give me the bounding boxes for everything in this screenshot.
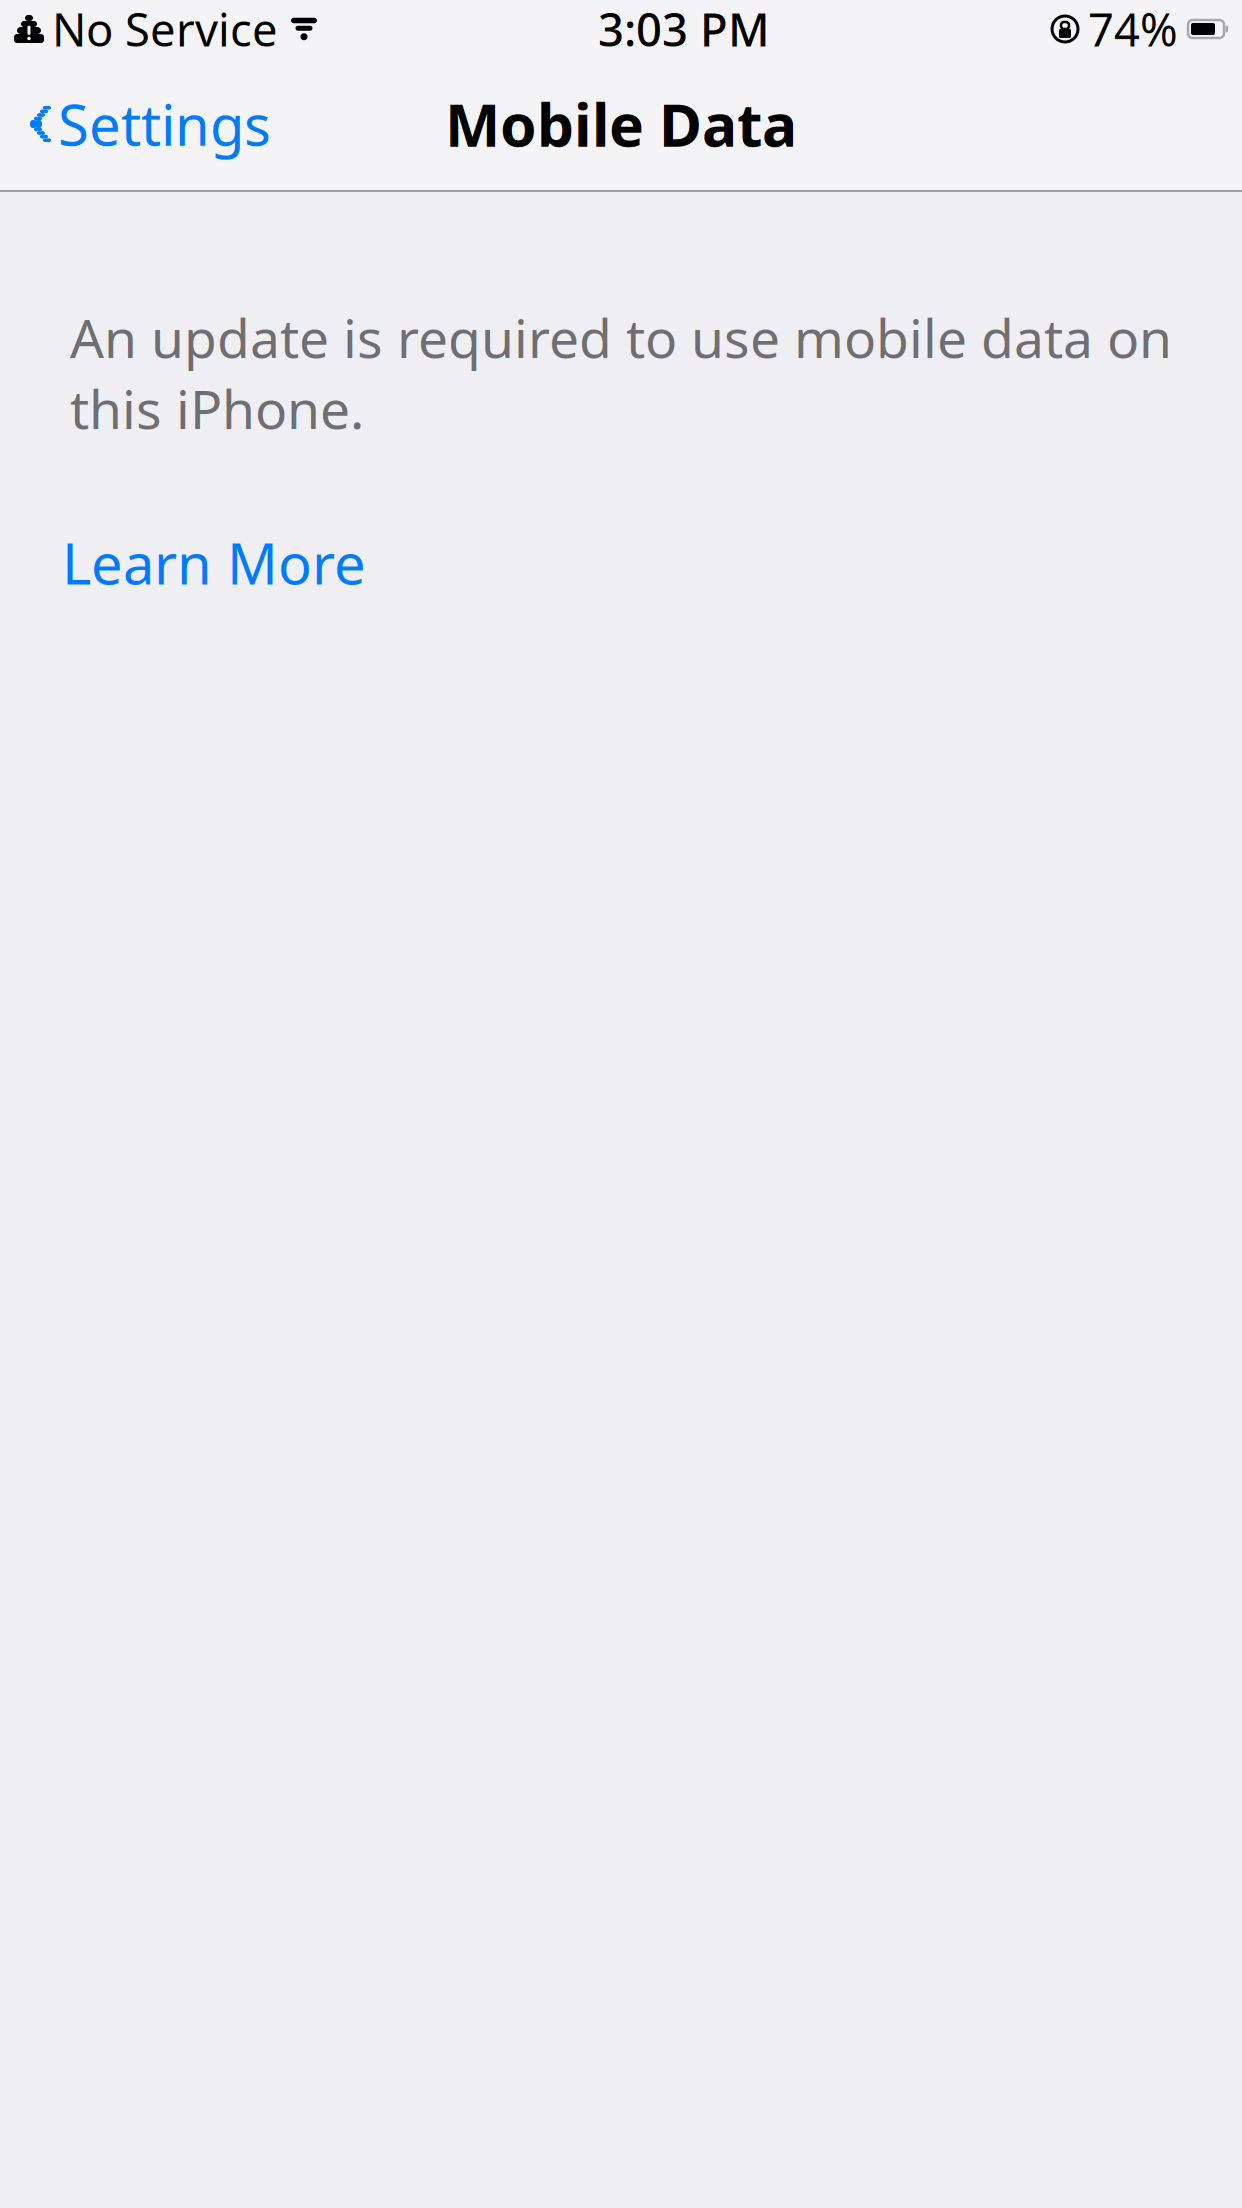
button[interactable]: Learn More xyxy=(58,516,370,610)
staticText: Settings xyxy=(58,87,271,161)
staticText: No Service xyxy=(52,0,278,59)
staticText: 74% xyxy=(1088,0,1178,59)
staticText: 3:03 PM xyxy=(598,0,770,59)
staticText: An update is required to use mobile data… xyxy=(70,302,1172,444)
staticText: Learn More xyxy=(62,526,366,600)
staticText: Mobile Data xyxy=(445,85,797,163)
button[interactable]: Settings xyxy=(0,75,287,173)
